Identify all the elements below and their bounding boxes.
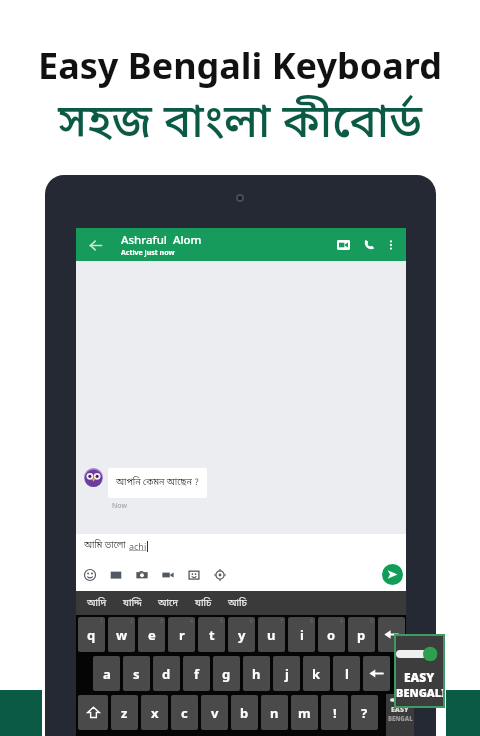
staticText: EASY: [404, 669, 435, 685]
button[interactable]: c: [171, 695, 198, 730]
staticText: o: [327, 626, 336, 644]
staticText: c: [181, 704, 188, 722]
staticText: 0: [370, 618, 373, 625]
staticText: y: [238, 626, 246, 644]
button[interactable]: Emoji: [79, 564, 101, 586]
button[interactable]: আচি: [228, 597, 247, 610]
button[interactable]: !: [321, 695, 348, 730]
staticText: 3: [160, 618, 163, 625]
button[interactable]: Back: [76, 228, 406, 261]
button[interactable]: Video call: [333, 235, 353, 255]
staticText: Active just now: [121, 248, 175, 258]
staticText: 5: [220, 618, 223, 625]
staticText: l: [345, 665, 349, 683]
button[interactable]: j: [273, 656, 300, 691]
button[interactable]: m: [291, 695, 318, 730]
button[interactable]: আদে: [158, 597, 179, 610]
staticText: a: [103, 665, 111, 683]
staticText: w: [116, 626, 128, 644]
staticText: আপনি কেমন আছেন ?: [116, 477, 199, 489]
button[interactable]: t: [198, 617, 225, 652]
button[interactable]: e: [138, 617, 165, 652]
button[interactable]: আদি: [87, 597, 107, 610]
button[interactable]: i: [288, 617, 315, 652]
button[interactable]: যাদ্দি: [123, 597, 142, 610]
staticText: 6: [250, 618, 253, 625]
button[interactable]: Location: [209, 564, 231, 586]
staticText: e: [148, 626, 156, 644]
staticText: !: [333, 704, 337, 722]
button[interactable]: b: [231, 695, 258, 730]
button[interactable]: Shift: [78, 695, 108, 730]
button[interactable]: d: [153, 656, 180, 691]
staticText: h: [252, 665, 261, 683]
staticText: q: [87, 626, 96, 644]
staticText: Ashraful Alom: [121, 232, 202, 248]
staticText: u: [267, 626, 276, 644]
staticText: i: [300, 626, 304, 644]
staticText: d: [162, 665, 171, 683]
button[interactable]: w: [108, 617, 135, 652]
staticText: আচি: [228, 597, 247, 610]
button[interactable]: v: [201, 695, 228, 730]
staticText: n: [270, 704, 279, 722]
staticText: k: [312, 665, 321, 683]
button[interactable]: Easy Bengali app icon: [396, 636, 443, 706]
button[interactable]: Gallery: [105, 564, 127, 586]
staticText: যাদ্দি: [123, 597, 142, 610]
staticText: 9: [340, 618, 343, 625]
staticText: Easy Bengali Keyboard: [38, 41, 442, 90]
button[interactable]: Video: [157, 564, 179, 586]
staticText: EASY: [391, 705, 409, 715]
button[interactable]: l: [333, 656, 360, 691]
button[interactable]: p: [348, 617, 375, 652]
button[interactable]: s: [123, 656, 150, 691]
staticText: achi: [129, 540, 147, 552]
button[interactable]: f: [183, 656, 210, 691]
button[interactable]: More options: [382, 236, 400, 254]
button[interactable]: Camera: [131, 564, 153, 586]
button[interactable]: a: [93, 656, 120, 691]
button[interactable]: k: [303, 656, 330, 691]
staticText: যাচি: [195, 597, 212, 610]
button[interactable]: n: [261, 695, 288, 730]
button[interactable]: y: [228, 617, 255, 652]
staticText: BENGAL: [388, 715, 413, 723]
staticText: সহজ বাংলা কীবোর্ড: [58, 95, 423, 156]
staticText: x: [151, 704, 159, 722]
button[interactable]: z: [111, 695, 138, 730]
staticText: 2: [130, 618, 133, 625]
staticText: 1: [100, 618, 103, 625]
staticText: 4: [190, 618, 193, 625]
button[interactable]: Enter: [363, 656, 390, 691]
staticText: BENGALI: [396, 685, 443, 700]
staticText: j: [285, 665, 289, 683]
staticText: z: [121, 704, 128, 722]
button[interactable]: q: [78, 617, 105, 652]
staticText: p: [357, 626, 366, 644]
button[interactable]: g: [213, 656, 240, 691]
button[interactable]: Send: [382, 564, 403, 585]
button[interactable]: o: [318, 617, 345, 652]
staticText: t: [209, 626, 215, 644]
button[interactable]: ?: [351, 695, 378, 730]
staticText: v: [211, 704, 219, 722]
staticText: Now: [112, 501, 127, 511]
button[interactable]: যাচি: [195, 597, 212, 610]
button[interactable]: Backspace: [378, 617, 405, 652]
button[interactable]: Back: [84, 234, 106, 256]
staticText: আদি: [87, 597, 107, 610]
staticText: r: [179, 626, 185, 644]
staticText: আমি ভালো: [84, 540, 129, 552]
staticText: 7: [280, 618, 283, 625]
staticText: ?: [361, 704, 368, 722]
button[interactable]: Sticker: [183, 564, 205, 586]
staticText: s: [133, 665, 140, 683]
button[interactable]: u: [258, 617, 285, 652]
staticText: 8: [310, 618, 313, 625]
button[interactable]: h: [243, 656, 270, 691]
button[interactable]: x: [141, 695, 168, 730]
button[interactable]: r: [168, 617, 195, 652]
button[interactable]: Call: [359, 235, 379, 255]
staticText: m: [298, 704, 311, 722]
